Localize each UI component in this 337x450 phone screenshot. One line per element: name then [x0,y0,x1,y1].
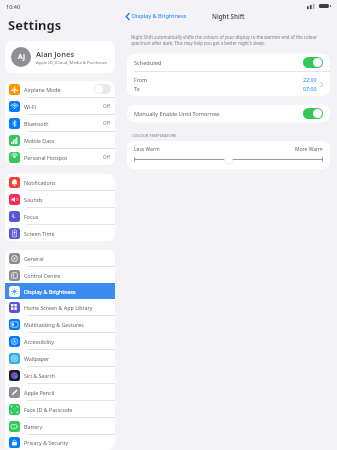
button[interactable]: From [127,72,330,96]
button[interactable]: Scheduled toggle [303,57,323,68]
staticText: Display & Brightness [24,288,76,295]
staticText: Display & Brightness [132,12,187,20]
button[interactable]: Screen Time [5,225,115,241]
staticText: More Warm [295,146,323,153]
button[interactable]: Face ID & Passcode [5,401,115,417]
button[interactable]: Notifications [5,174,115,190]
staticText: COLOUR TEMPERATURE [132,133,177,138]
staticText: Wi-Fi [24,103,37,110]
button[interactable]: Sounds [5,191,115,207]
staticText: Sounds [24,196,43,203]
button[interactable]: Manually Enable Until Tomorrow toggle [303,108,323,119]
staticText: Apple ID, iCloud, Media & Purchases [36,60,108,66]
staticText: Face ID & Passcode [24,406,73,413]
staticText: AJ [18,52,25,62]
button[interactable]: Personal Hotspot [5,149,115,165]
button[interactable]: Apple Pencil [5,384,115,400]
staticText: Privacy & Security [24,439,69,446]
staticText: Home Screen & App Library [24,304,93,311]
staticText: Off [103,154,111,161]
button[interactable]: Battery [5,418,115,434]
staticText: General [24,255,44,262]
button[interactable]: Control Centre [5,267,115,283]
staticText: Focus [24,213,39,220]
staticText: Off [103,120,111,127]
button[interactable]: Siri & Search [5,367,115,383]
button[interactable]: Manually Enable Until Tomorrow [127,105,330,122]
staticText: Settings [8,16,62,34]
staticText: Night Shift [212,12,245,20]
button[interactable]: General [5,250,115,266]
button[interactable]: Colour temperature slider [134,155,323,164]
staticText: Siri & Search [24,372,56,379]
staticText: From [134,76,147,83]
staticText: Night Shift automatically shifts the col… [131,34,326,46]
button[interactable]: Focus [5,208,115,224]
staticText: Notifications [24,179,56,186]
staticText: Personal Hotspot [24,154,68,161]
staticText: Bluetooth [24,120,49,127]
button[interactable]: AJ [5,41,115,73]
button[interactable]: Airplane Mode [5,81,115,97]
staticText: Accessibility [24,338,54,345]
button[interactable]: Bluetooth [5,115,115,131]
button[interactable]: Mobile Data [5,132,115,148]
staticText: Apple Pencil [24,389,55,396]
staticText: Mobile Data [24,137,55,144]
button[interactable]: Display & Brightness [5,283,115,299]
staticText: Screen Time [24,230,55,237]
button[interactable]: Display & Brightness [120,10,191,22]
staticText: Control Centre [24,272,61,279]
button[interactable]: Accessibility [5,333,115,349]
staticText: To [134,85,140,92]
staticText: Off [103,103,111,110]
staticText: 07:00 [303,85,317,92]
button[interactable]: Wallpaper [5,350,115,366]
button[interactable]: Wi-Fi [5,98,115,114]
button[interactable]: Privacy & Security [5,435,115,450]
staticText: Wallpaper [24,355,50,362]
staticText: Airplane Mode [24,86,61,93]
staticText: Alan Jones [36,49,75,59]
button[interactable]: Scheduled [127,54,330,71]
staticText: Scheduled [134,59,162,67]
staticText: Less Warm [134,146,160,153]
button[interactable]: Airplane Mode toggle [94,84,111,94]
button[interactable]: Multitasking & Gestures [5,316,115,332]
staticText: 22:00 [303,76,317,83]
staticText: Multitasking & Gestures [24,321,84,328]
button[interactable]: Home Screen & App Library [5,299,115,315]
staticText: 10:40 [6,3,21,10]
staticText: Battery [24,423,43,430]
staticText: Manually Enable Until Tomorrow [134,110,220,118]
